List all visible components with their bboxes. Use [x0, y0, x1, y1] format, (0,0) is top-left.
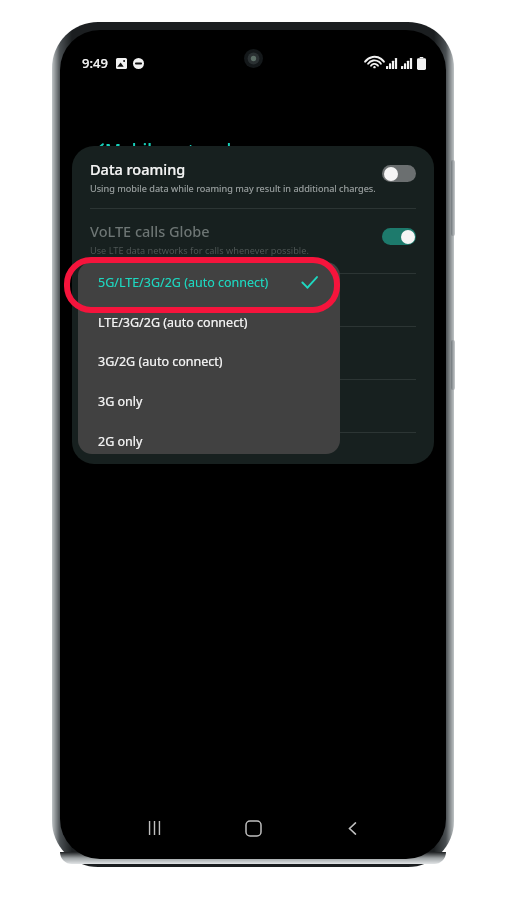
button[interactable]: Home [231, 806, 275, 850]
staticText: LTE/3G/2G (auto connect) [98, 314, 248, 331]
button[interactable]: 2G only [78, 421, 340, 454]
button[interactable]: Recents [132, 806, 176, 850]
button[interactable]: LTE/3G/2G (auto connect) [78, 302, 340, 342]
staticText: 9:49 [82, 54, 108, 72]
button[interactable]: 3G/2G (auto connect) [78, 341, 340, 381]
staticText: Using mobile data while roaming may resu… [90, 182, 376, 195]
staticText: VoLTE calls Globe [90, 221, 210, 241]
button[interactable]: 5G/LTE/3G/2G (auto connect) [78, 262, 340, 302]
staticText: 3G only [98, 393, 143, 410]
button[interactable]: Off [382, 165, 416, 182]
button[interactable]: 3G only [78, 381, 340, 421]
staticText: 5G/LTE/3G/2G (auto connect) [98, 274, 269, 291]
staticText: Mobile networks [105, 138, 245, 162]
button[interactable]: Back [330, 806, 374, 850]
button[interactable]: Back [82, 133, 116, 167]
button[interactable]: Data roaming [72, 146, 434, 208]
staticText: Use LTE data networks for calls whenever… [90, 244, 309, 257]
button[interactable]: On [382, 228, 416, 245]
staticText: Data roaming [90, 159, 186, 179]
staticText: 2G only [98, 433, 143, 450]
button[interactable]: VoLTE calls Globe [72, 209, 434, 269]
staticText: 3G/2G (auto connect) [98, 353, 223, 370]
